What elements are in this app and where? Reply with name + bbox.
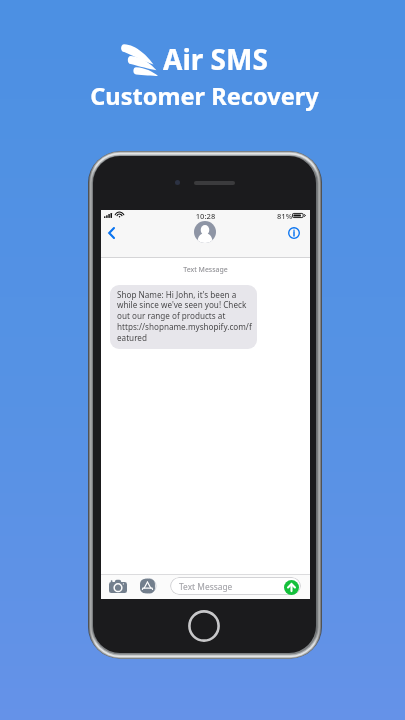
- button[interactable]: Camera: [109, 577, 127, 594]
- button[interactable]: Send: [284, 580, 299, 595]
- staticText: Shop Name: Hi John, it's been a while si…: [117, 289, 252, 344]
- staticText: 81%: [277, 211, 293, 221]
- button[interactable]: Back: [101, 223, 121, 243]
- button[interactable]: Info: [284, 223, 304, 243]
- staticText: Customer Recovery: [2, 80, 405, 112]
- staticText: Text Message: [101, 265, 310, 275]
- staticText: Text Message: [179, 581, 233, 592]
- staticText: Air SMS: [163, 40, 268, 78]
- staticText: 10:28: [101, 211, 310, 221]
- button[interactable]: Text Message: [170, 577, 301, 595]
- button[interactable]: Contact: [194, 221, 216, 243]
- button[interactable]: App Store: [140, 578, 157, 594]
